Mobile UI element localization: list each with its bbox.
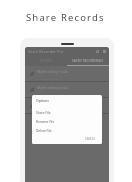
staticText: RECORD bbox=[40, 59, 53, 63]
staticText: My Recording 1.m4a bbox=[37, 70, 68, 74]
button[interactable]: SAVED RECORDINGS bbox=[67, 56, 109, 66]
button[interactable]: Settings bbox=[95, 49, 100, 54]
button[interactable]: Share File bbox=[32, 108, 102, 117]
staticText: My Recording 3.m4a bbox=[37, 102, 68, 106]
staticText: SAVED RECORDINGS bbox=[72, 59, 104, 63]
staticText: CANCEL bbox=[85, 137, 96, 141]
button[interactable]: My Recording 1.m4a bbox=[25, 66, 109, 81]
staticText: Options bbox=[36, 98, 49, 103]
staticText: Rename File bbox=[36, 120, 55, 124]
staticText: Delete File bbox=[36, 129, 52, 133]
staticText: Share Records bbox=[26, 11, 105, 24]
staticText: 17/11/2019 1:25 PM bbox=[37, 110, 59, 113]
button[interactable]: Delete File bbox=[32, 126, 102, 135]
staticText: Share File bbox=[36, 111, 51, 115]
button[interactable]: My Recording 3.m4a bbox=[25, 98, 109, 113]
button[interactable]: CANCEL bbox=[85, 137, 102, 144]
staticText: My Recording 2.m4a bbox=[37, 86, 68, 90]
button[interactable]: My Recording 2.m4a bbox=[25, 82, 109, 97]
button[interactable]: More options bbox=[102, 49, 107, 54]
staticText: Voice Recorder Pro bbox=[28, 49, 64, 54]
button[interactable]: Rename File bbox=[32, 117, 102, 126]
staticText: 17/11/2019 1:25 PM bbox=[37, 94, 59, 97]
